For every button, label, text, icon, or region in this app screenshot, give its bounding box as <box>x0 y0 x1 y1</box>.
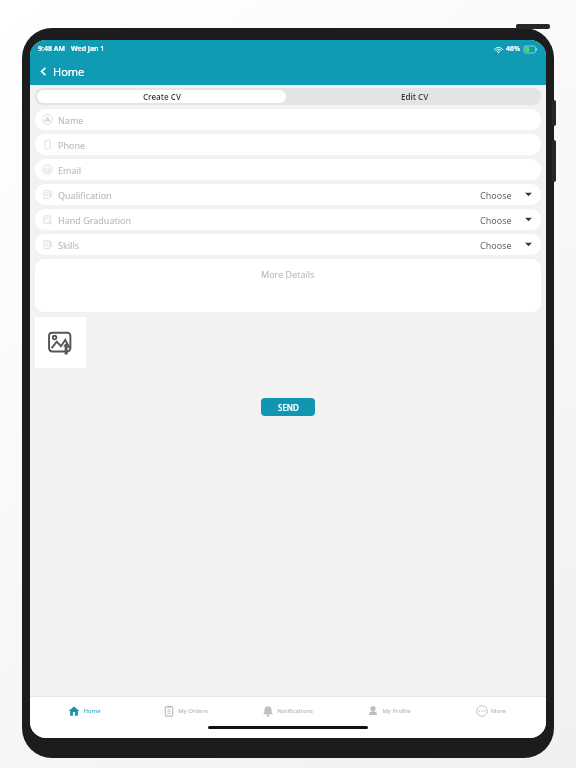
staticText: Skills <box>58 239 80 251</box>
button[interactable]: My Profile <box>338 696 440 726</box>
button[interactable]: Email <box>35 159 541 180</box>
staticText: Qualification <box>58 189 112 201</box>
staticText: Edit CV <box>401 91 429 102</box>
staticText: Home <box>53 64 85 79</box>
staticText: SEND <box>278 402 299 413</box>
staticText: Create CV <box>143 91 181 102</box>
button[interactable]: My Orders <box>135 696 236 726</box>
staticText: Home <box>83 707 101 715</box>
staticText: Choose <box>480 189 512 201</box>
staticText: Choose <box>480 214 512 226</box>
button[interactable]: Home <box>36 61 87 82</box>
staticText: Email <box>58 164 82 176</box>
staticText: Wed Jan 1 <box>71 44 105 54</box>
button[interactable]: Upload image <box>35 317 86 368</box>
staticText: Name <box>58 114 84 126</box>
button[interactable]: Skills <box>35 234 541 255</box>
staticText: Phone <box>58 139 86 151</box>
button[interactable]: Create CV <box>37 90 286 103</box>
button[interactable]: Qualification <box>35 184 541 205</box>
staticText: Notifications <box>277 707 313 715</box>
button[interactable]: Notifications <box>236 696 338 726</box>
staticText: Choose <box>480 239 512 251</box>
staticText: My Profile <box>382 707 411 715</box>
button[interactable]: SEND <box>261 398 315 416</box>
staticText: 9:48 AM <box>38 44 65 54</box>
button[interactable]: Hand Graduation <box>35 209 541 230</box>
button[interactable]: Edit CV <box>288 88 541 105</box>
staticText: More <box>491 707 506 715</box>
staticText: 46% <box>506 44 521 54</box>
button[interactable]: More Details <box>35 259 541 312</box>
staticText: Hand Graduation <box>58 214 132 226</box>
button[interactable]: Phone <box>35 134 541 155</box>
staticText: More Details <box>261 268 315 280</box>
button[interactable]: More <box>440 696 542 726</box>
button[interactable]: Home <box>34 696 135 726</box>
staticText: My Orders <box>178 707 208 715</box>
button[interactable]: Name <box>35 109 541 130</box>
